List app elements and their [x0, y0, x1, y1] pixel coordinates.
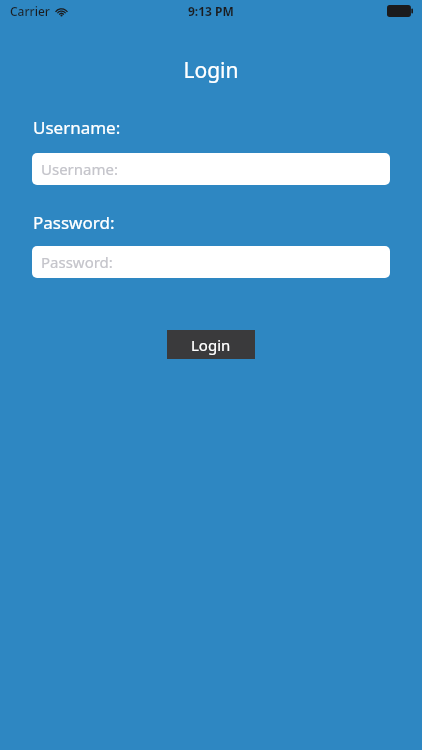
other: Battery full	[387, 5, 413, 17]
button[interactable]: Login	[167, 330, 255, 359]
button[interactable]: Password:	[32, 246, 390, 278]
staticText: 9:13 PM	[188, 3, 234, 19]
other: Wi-Fi signal	[55, 6, 68, 17]
staticText: Username:	[41, 159, 118, 179]
staticText: Login	[0, 56, 422, 85]
staticText: Carrier	[10, 3, 50, 19]
staticText: Password:	[33, 211, 115, 234]
button[interactable]: Username:	[32, 153, 390, 185]
staticText: Username:	[33, 116, 121, 139]
staticText: Password:	[41, 252, 113, 272]
staticText: Login	[191, 335, 231, 355]
